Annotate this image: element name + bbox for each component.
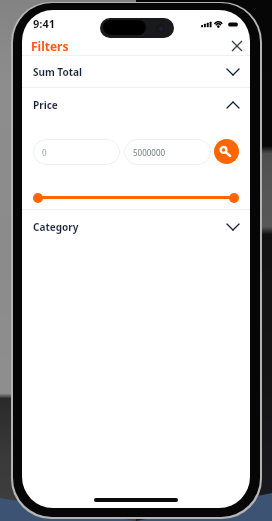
- staticText: 0: [42, 147, 47, 158]
- button[interactable]: 0: [33, 139, 120, 165]
- staticText: Price: [33, 98, 58, 112]
- staticText: Category: [33, 220, 79, 234]
- button[interactable]: Maximum price: [229, 193, 239, 203]
- staticText: Filters: [31, 38, 69, 54]
- staticText: 9:41: [33, 16, 55, 31]
- button[interactable]: Price: [22, 88, 250, 121]
- button[interactable]: Sum Total: [22, 56, 250, 87]
- staticText: Sum Total: [33, 65, 82, 79]
- button[interactable]: Search: [214, 139, 239, 164]
- button[interactable]: Minimum price: [33, 193, 43, 203]
- staticText: 5000000: [133, 147, 166, 158]
- button[interactable]: Category: [22, 210, 250, 243]
- button[interactable]: Close: [227, 36, 247, 56]
- button[interactable]: 5000000: [124, 139, 211, 165]
